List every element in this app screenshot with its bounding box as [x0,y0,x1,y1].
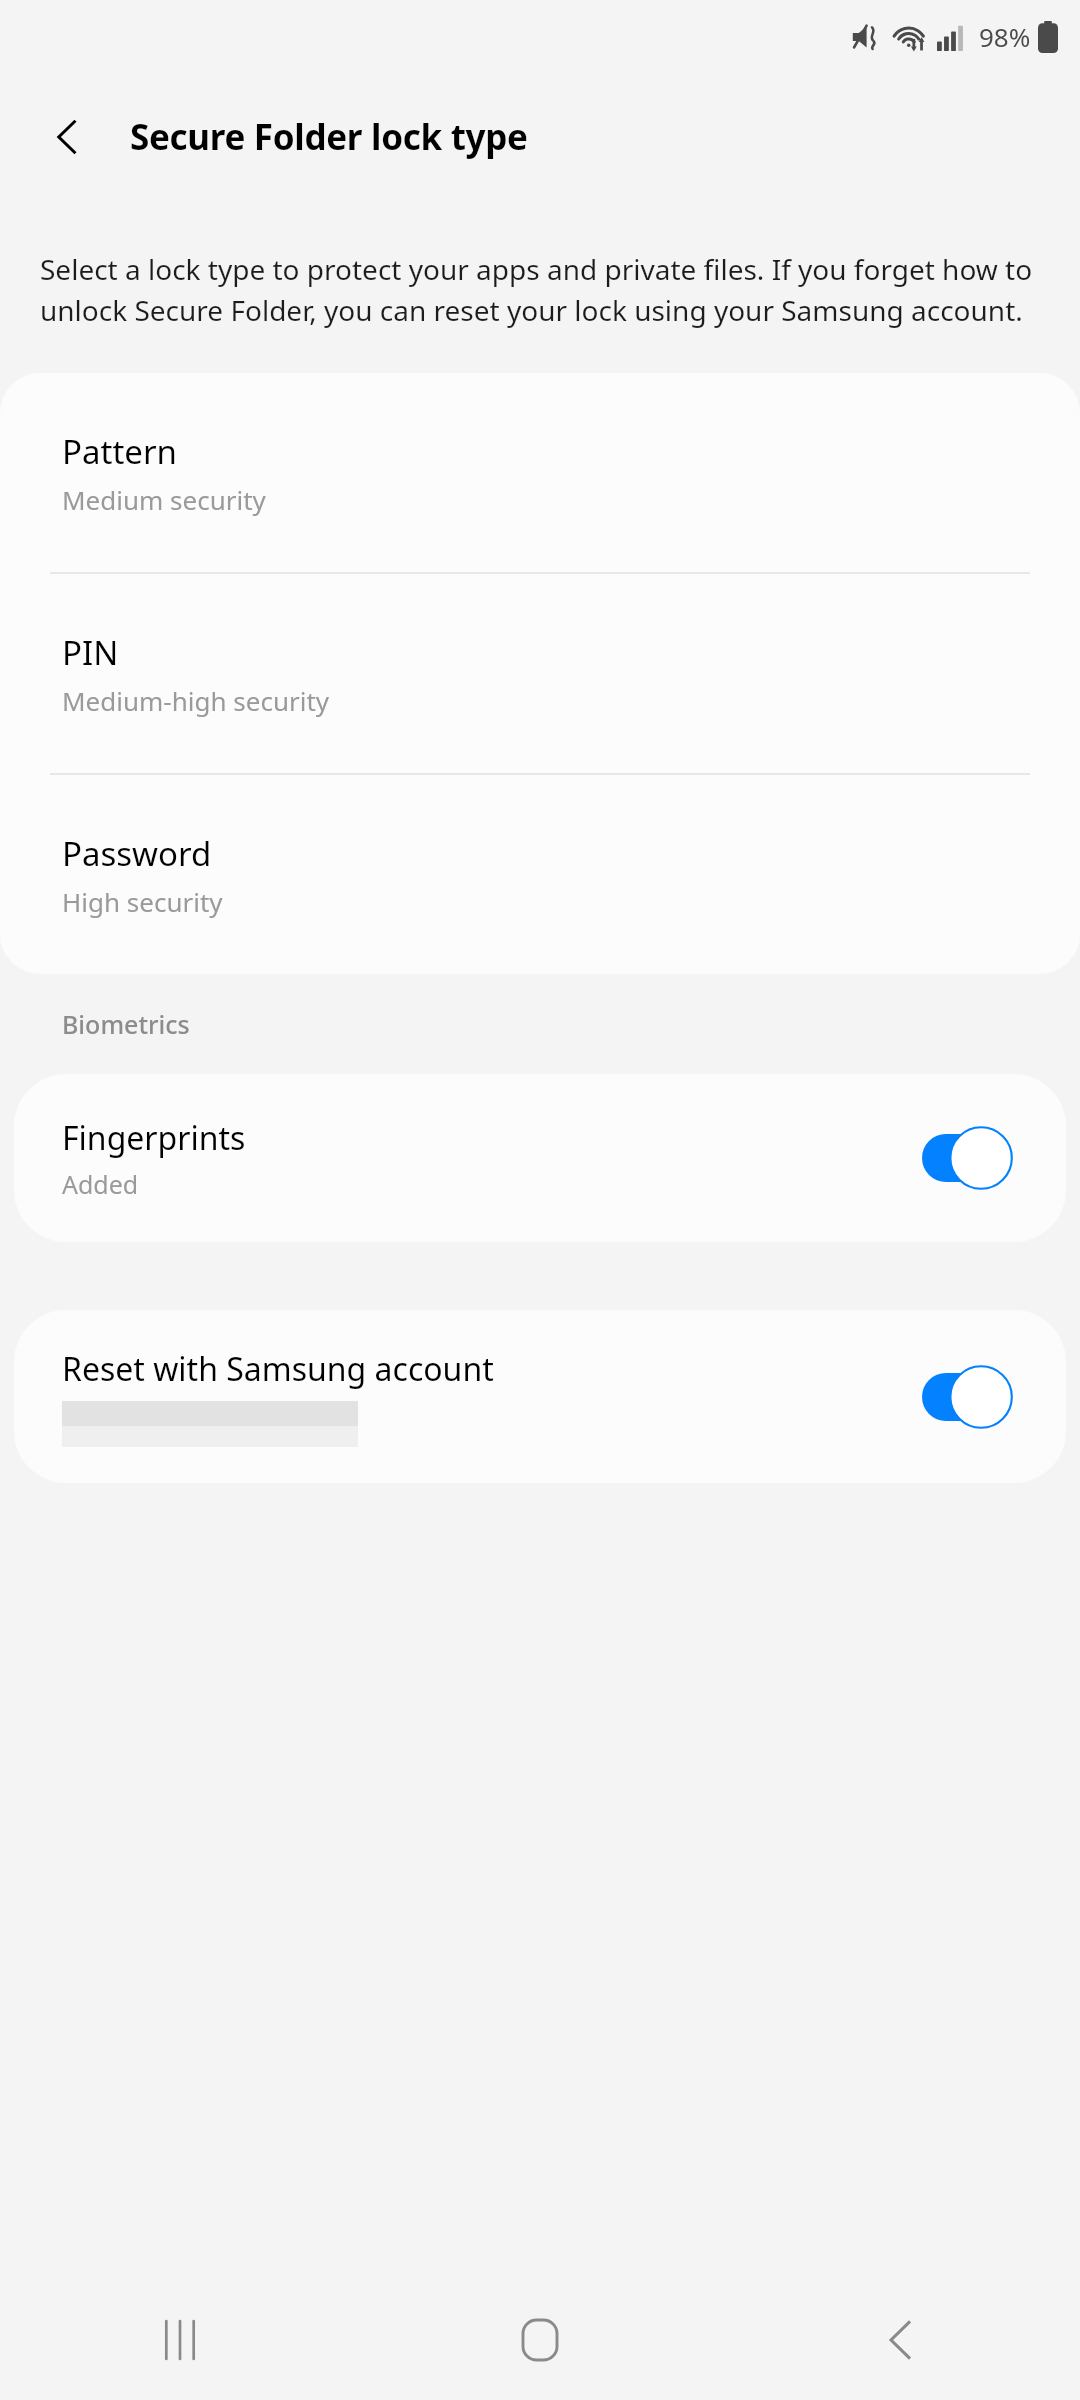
staticText: Select a lock type to protect your apps … [40,250,1058,329]
staticText: Secure Folder lock type [130,113,528,161]
button[interactable]: Back [720,2280,1080,2400]
button[interactable]: Home [360,2280,720,2400]
staticText: High security [62,884,223,919]
button[interactable]: PIN [0,574,1080,773]
staticText: Reset with Samsung account [62,1347,494,1391]
staticText: Added [62,1167,139,1201]
staticText: Fingerprints [62,1116,246,1160]
button[interactable]: Toggle on [922,1357,1018,1437]
button[interactable]: Back [36,105,100,169]
staticText: 98% [979,19,1031,54]
button[interactable]: Reset with Samsung account [14,1310,1066,1483]
button[interactable]: Fingerprints [14,1074,1066,1242]
button[interactable]: Password [0,775,1080,974]
staticText: Pattern [62,429,177,474]
staticText: Biometrics [62,1007,190,1041]
staticText: Password [62,831,212,876]
button[interactable]: Toggle on [922,1118,1018,1198]
staticText: PIN [62,630,119,675]
button[interactable]: Recent apps [0,2280,360,2400]
staticText: Medium security [62,482,266,517]
staticText: Medium-high security [62,683,330,718]
button[interactable]: Pattern [0,373,1080,572]
